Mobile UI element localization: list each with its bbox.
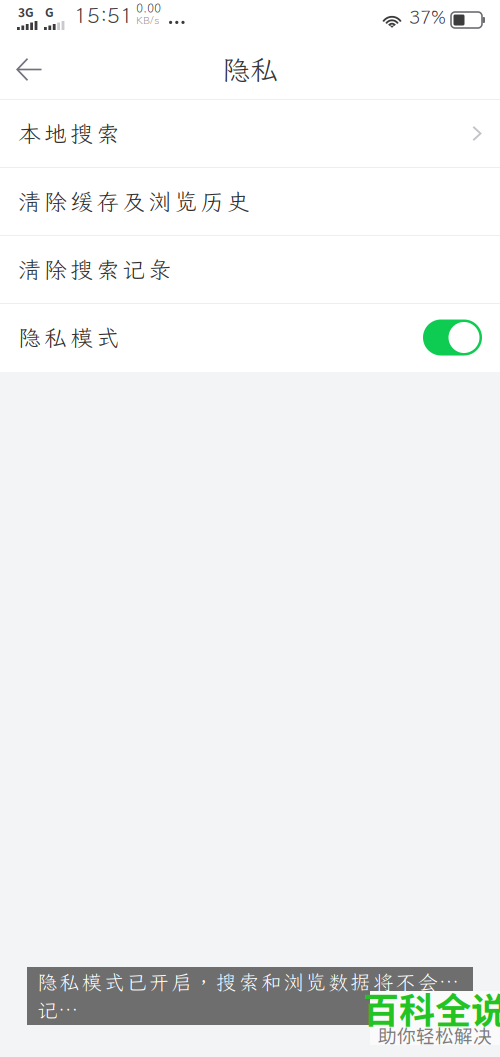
staticText: G bbox=[45, 3, 54, 20]
staticText: 3G bbox=[18, 3, 34, 20]
staticText: 百科全说 bbox=[363, 982, 500, 1034]
staticText: 15:51 bbox=[74, 1, 133, 29]
staticText: 本地搜索 bbox=[18, 119, 119, 148]
staticText: 清除搜索记录 bbox=[18, 255, 171, 284]
button[interactable]: 隐私模式 bbox=[0, 304, 500, 372]
staticText: 隐私模式已开启，搜索和浏览数据将不会被 bbox=[37, 969, 460, 995]
staticText: 助你轻松解决 bbox=[378, 1021, 492, 1048]
button[interactable]: 本地搜索 bbox=[0, 100, 500, 168]
button[interactable]: 清除搜索记录 bbox=[0, 236, 500, 304]
staticText: 37% bbox=[409, 4, 446, 29]
staticText: 记录 bbox=[37, 997, 79, 1023]
staticText: 清除缓存及浏览历史 bbox=[18, 187, 250, 216]
button[interactable]: Back bbox=[0, 40, 58, 98]
staticText: 0.00 bbox=[136, 0, 161, 16]
button[interactable]: 清除缓存及浏览历史 bbox=[0, 168, 500, 236]
staticText: KB/s bbox=[136, 13, 159, 27]
staticText: 隐私 bbox=[222, 51, 278, 88]
staticText: 隐私模式 bbox=[18, 323, 119, 352]
